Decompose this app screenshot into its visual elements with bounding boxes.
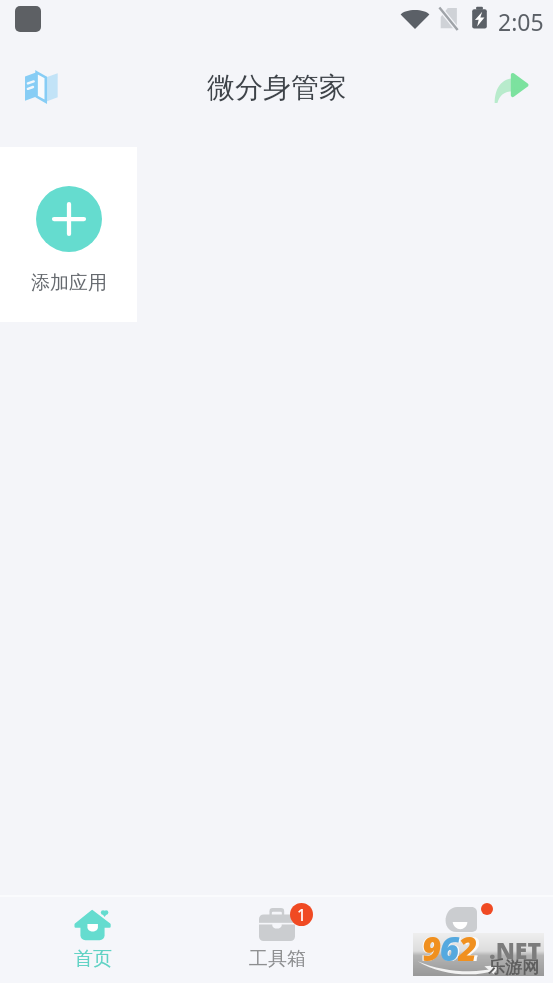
button[interactable]: 1 [185, 897, 369, 983]
staticText: 9 [422, 926, 442, 969]
staticText: .NET [489, 934, 542, 965]
staticText: 1 [297, 904, 307, 926]
staticText: 2 [458, 926, 478, 969]
staticText: 添加应用 [31, 271, 107, 295]
staticText: 首页 [74, 947, 112, 971]
staticText: 微分身管家 [207, 70, 347, 105]
button[interactable]: Map [19, 65, 63, 109]
button[interactable]: 首页 [0, 897, 185, 983]
staticText: 6 [440, 926, 460, 969]
staticText: 2:05 [498, 6, 544, 37]
button[interactable]: 添加应用 [0, 147, 137, 322]
staticText: 962 [421, 925, 481, 968]
staticText: 工具箱 [249, 947, 306, 971]
button[interactable]: 我的 [369, 897, 553, 983]
staticText: 我的 [442, 947, 480, 971]
staticText: 乐游网 [488, 957, 539, 978]
button[interactable]: Share [487, 63, 535, 111]
